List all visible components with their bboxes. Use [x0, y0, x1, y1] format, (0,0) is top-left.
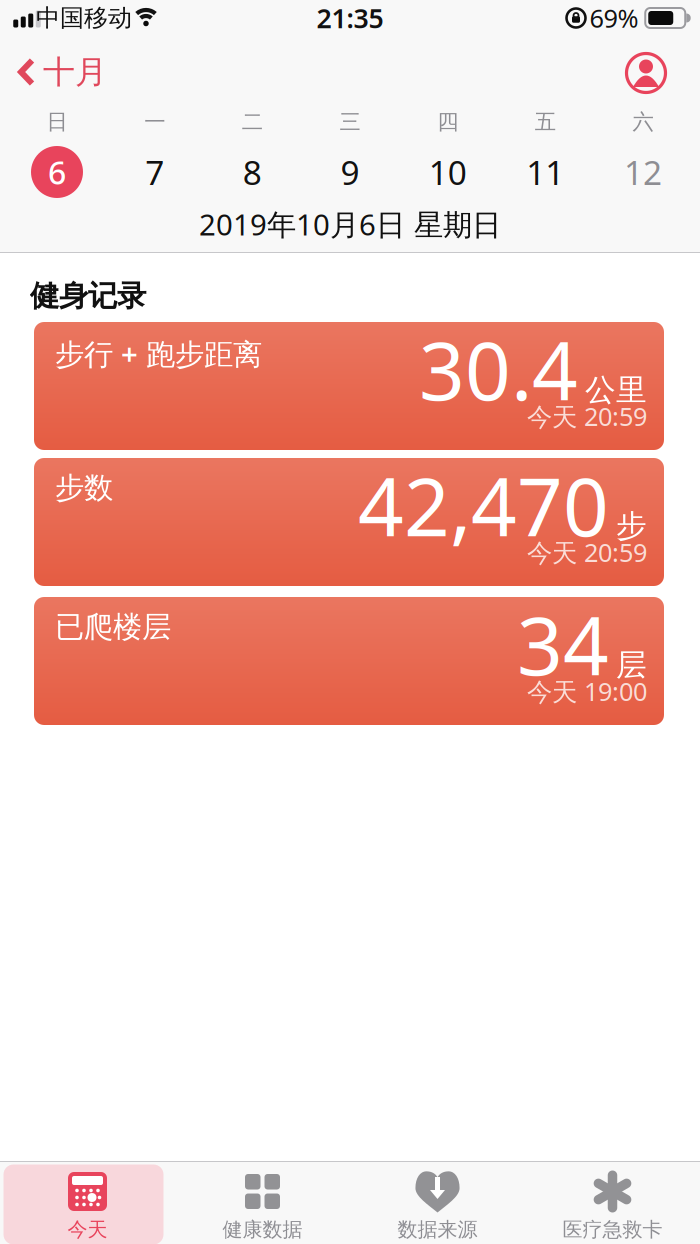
button[interactable]: 10	[420, 144, 476, 200]
staticText: 健康数据	[222, 1217, 302, 1242]
staticText: 6	[48, 151, 66, 193]
button[interactable]: 12	[615, 144, 671, 200]
staticText: 一	[144, 109, 165, 135]
staticText: 11	[526, 150, 564, 194]
button[interactable]: 十月	[17, 52, 107, 92]
staticText: 六	[632, 109, 653, 135]
staticText: 34	[517, 591, 609, 697]
staticText: 十月	[43, 52, 107, 92]
staticText: 21:35	[316, 0, 383, 36]
staticText: 7	[145, 150, 164, 194]
button[interactable]: 11	[517, 144, 573, 200]
staticText: 步	[616, 507, 647, 545]
staticText: 8	[243, 150, 262, 194]
button[interactable]: 已爬楼层	[34, 597, 664, 725]
button[interactable]: 步行 + 跑步距离	[34, 322, 664, 450]
staticText: 健身记录	[30, 278, 146, 314]
staticText: 五	[535, 109, 556, 135]
staticText: 今天 19:00	[527, 674, 647, 708]
staticText: 日	[46, 109, 67, 135]
button[interactable]: 7	[127, 144, 183, 200]
staticText: 步数	[55, 470, 113, 506]
staticText: 30.4	[419, 316, 578, 422]
button[interactable]: 8	[224, 144, 280, 200]
staticText: 9	[340, 150, 359, 194]
staticText: 层	[616, 646, 647, 684]
staticText: 69%	[589, 1, 638, 35]
staticText: 数据来源	[397, 1217, 477, 1242]
button[interactable]	[626, 53, 666, 93]
staticText: 中国移动	[36, 3, 132, 33]
staticText: 12	[624, 150, 662, 194]
button[interactable]: 健康数据	[175, 1161, 350, 1244]
button[interactable]: 今天	[0, 1161, 175, 1244]
staticText: 今天	[67, 1217, 107, 1242]
staticText: 10	[429, 150, 467, 194]
staticText: 二	[242, 109, 263, 135]
button[interactable]: 数据来源	[350, 1161, 525, 1244]
staticText: 已爬楼层	[55, 609, 171, 645]
button[interactable]: 9	[322, 144, 378, 200]
staticText: 今天 20:59	[527, 535, 647, 569]
staticText: 医疗急救卡	[562, 1217, 662, 1242]
button[interactable]: 6	[29, 144, 85, 200]
button[interactable]: 步数	[34, 458, 664, 586]
staticText: 四	[437, 109, 458, 135]
staticText: 42,470	[358, 452, 609, 558]
staticText: 步行 + 跑步距离	[55, 334, 262, 373]
staticText: 三	[339, 109, 360, 135]
button[interactable]: 医疗急救卡	[525, 1161, 700, 1244]
staticText: 2019年10月6日 星期日	[199, 204, 501, 243]
staticText: 公里	[585, 371, 647, 409]
staticText: 今天 20:59	[527, 399, 647, 433]
